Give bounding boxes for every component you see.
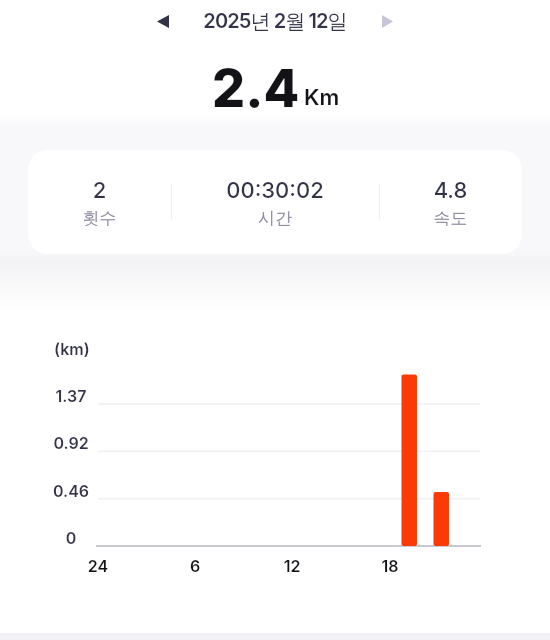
- staticText: 0: [41, 528, 101, 547]
- button[interactable]: Previous day: [145, 3, 181, 39]
- button[interactable]: 2: [28, 150, 171, 254]
- staticText: 횟수: [28, 208, 171, 229]
- button[interactable]: Next day: [369, 3, 405, 39]
- staticText: 0.46: [41, 481, 101, 500]
- staticText: 00:30:02: [171, 177, 379, 204]
- staticText: 12: [267, 556, 317, 575]
- staticText: 18: [365, 556, 415, 575]
- staticText: 2: [28, 177, 171, 204]
- staticText: 0.92: [41, 433, 101, 452]
- staticText: 2025년 2월 12일: [203, 9, 347, 34]
- button[interactable]: 2025년 2월 12일: [185, 0, 365, 43]
- staticText: 1.37: [41, 386, 101, 405]
- button[interactable]: 4.8: [379, 150, 522, 254]
- staticText: 6: [170, 556, 220, 575]
- staticText: 속도: [379, 208, 522, 229]
- staticText: 시간: [171, 208, 379, 229]
- staticText: 2.4: [212, 57, 300, 120]
- staticText: 24: [73, 556, 123, 575]
- button[interactable]: 00:30:02: [171, 150, 379, 254]
- staticText: 4.8: [379, 177, 522, 204]
- staticText: Km: [304, 84, 340, 111]
- staticText: (km): [54, 339, 114, 358]
